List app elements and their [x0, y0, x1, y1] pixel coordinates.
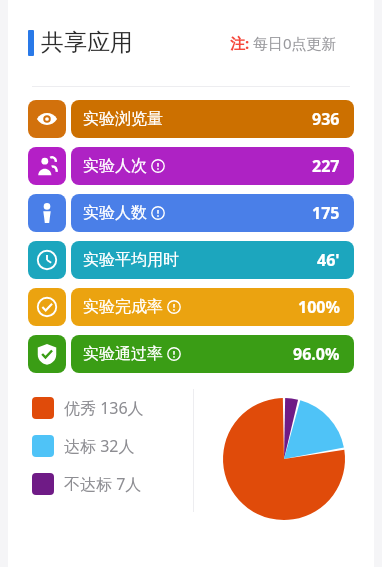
- staticText: 实验平均用时: [83, 250, 179, 270]
- staticText: 不达标 7人: [64, 473, 142, 495]
- button[interactable]: 实验浏览量: [28, 100, 354, 138]
- staticText: 共享应用: [41, 28, 133, 57]
- staticText: 优秀 136人: [64, 397, 144, 419]
- staticText: 实验人次: [83, 156, 147, 176]
- staticText: 实验人数: [83, 203, 147, 223]
- button[interactable]: 实验完成率: [28, 288, 354, 326]
- other: 实验通过率: [28, 335, 66, 373]
- other: 实验浏览量: [28, 100, 66, 138]
- staticText: 实验完成率: [83, 297, 163, 317]
- staticText: 达标 32人: [64, 435, 135, 457]
- button[interactable]: 实验通过率: [28, 335, 354, 373]
- staticText: 175: [312, 202, 340, 224]
- staticText: 实验通过率: [83, 344, 163, 364]
- staticText: 96.0%: [293, 343, 340, 365]
- button[interactable]: 优秀 136人: [32, 397, 144, 419]
- button[interactable]: 达标 32人: [32, 435, 135, 457]
- other: 实验人数: [28, 194, 66, 232]
- button[interactable]: 实验平均用时: [28, 241, 354, 279]
- staticText: 实验浏览量: [83, 109, 163, 129]
- staticText: 227: [312, 155, 340, 177]
- other: 实验人次: [28, 147, 66, 185]
- staticText: 每日0点更新: [253, 33, 337, 53]
- staticText: 注:: [230, 33, 250, 53]
- button[interactable]: 实验人次: [28, 147, 354, 185]
- staticText: 936: [312, 108, 340, 130]
- button[interactable]: 实验人数: [28, 194, 354, 232]
- other: 实验完成率: [28, 288, 66, 326]
- button[interactable]: 不达标 7人: [32, 473, 142, 495]
- staticText: 100%: [298, 296, 340, 318]
- other: 实验平均用时: [28, 241, 66, 279]
- staticText: 46': [317, 249, 340, 271]
